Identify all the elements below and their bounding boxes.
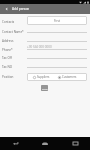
staticText: Contact Name* [2, 30, 24, 34]
staticText: Tax NO [2, 65, 13, 69]
staticText: Contacts [2, 20, 15, 24]
button[interactable]: +90 544 000 0000 [27, 44, 87, 50]
staticText: Phone* [2, 48, 13, 52]
button[interactable]: First [27, 16, 87, 25]
staticText: Customers [62, 75, 77, 79]
button[interactable] [27, 36, 87, 42]
button[interactable]: Recent apps [66, 137, 84, 150]
staticText: Tax Off [2, 56, 12, 60]
button[interactable]: Customers [58, 75, 77, 79]
staticText: First [54, 19, 61, 23]
button[interactable]: SAVE [41, 85, 48, 91]
button[interactable] [27, 53, 87, 59]
button[interactable] [27, 62, 87, 68]
staticText: Add person [12, 7, 30, 11]
staticText: Position [2, 75, 14, 79]
button[interactable]: Home [36, 137, 54, 150]
button[interactable]: Navigate up [0, 4, 12, 14]
button[interactable]: Back [7, 137, 25, 150]
staticText: Suppliers [37, 75, 50, 79]
staticText: Address [2, 39, 14, 43]
button[interactable]: Suppliers [33, 75, 50, 79]
staticText: SAVE [42, 87, 48, 90]
button[interactable] [27, 27, 87, 33]
staticText: +90 544 000 0000 [27, 45, 52, 49]
